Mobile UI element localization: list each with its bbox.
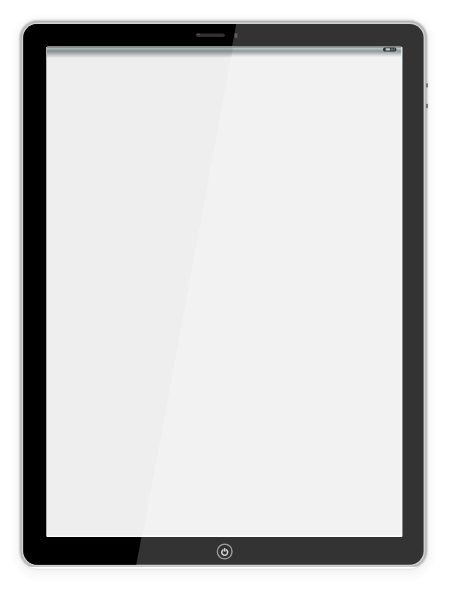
button[interactable]: Home power button [214,541,236,563]
button[interactable]: Tablet computer [0,0,450,600]
button[interactable]: Tablet screen [47,47,402,536]
